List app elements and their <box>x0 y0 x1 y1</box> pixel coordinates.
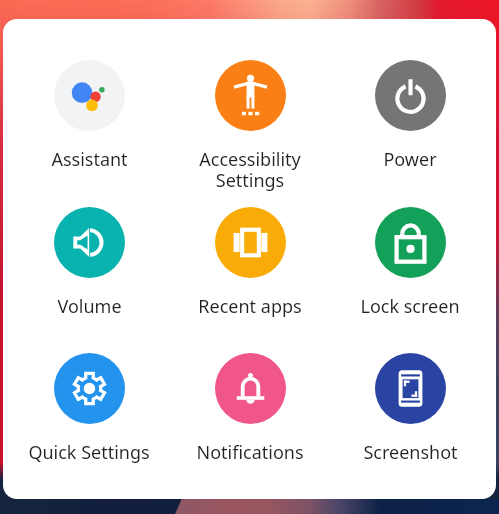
button[interactable]: Quick Settings <box>14 353 164 465</box>
button[interactable]: Power <box>335 60 485 172</box>
staticText: Lock screen <box>360 294 460 319</box>
button[interactable]: Assistant <box>14 60 164 172</box>
other: Accessibility Settings <box>215 60 286 131</box>
staticText: Accessibility Settings <box>199 147 301 192</box>
button[interactable]: Accessibility Settings <box>175 60 325 192</box>
button[interactable]: Recent apps <box>175 207 325 319</box>
staticText: Quick Settings <box>28 440 150 465</box>
staticText: Volume <box>57 294 122 319</box>
other: Lock screen <box>375 207 446 278</box>
staticText: Notifications <box>196 440 304 465</box>
other: Quick Settings <box>54 353 125 424</box>
button[interactable]: Screenshot <box>335 353 485 465</box>
staticText: Screenshot <box>363 440 458 465</box>
button[interactable]: Lock screen <box>335 207 485 319</box>
staticText: Recent apps <box>198 294 302 319</box>
button[interactable]: Volume <box>14 207 164 319</box>
staticText: Assistant <box>51 147 128 172</box>
button[interactable]: Notifications <box>175 353 325 465</box>
other: Assistant <box>54 60 125 131</box>
other: Screenshot <box>375 353 446 424</box>
other: Volume <box>54 207 125 278</box>
staticText: Power <box>383 147 437 172</box>
other: Notifications <box>215 353 286 424</box>
other: Power <box>375 60 446 131</box>
other: Recent apps <box>215 207 286 278</box>
